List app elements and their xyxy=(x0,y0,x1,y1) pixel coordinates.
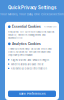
staticText: These cookies help us count visits and t… xyxy=(8,47,52,56)
staticText: Always On xyxy=(44,25,56,28)
staticText: Save Preferences xyxy=(19,92,45,95)
staticText: Analytics Cookies xyxy=(12,42,41,46)
button[interactable]: Save Preferences xyxy=(8,91,56,97)
staticText: Anonymous device information xyxy=(11,67,47,70)
staticText: Essential Cookies xyxy=(12,25,41,29)
staticText: Pages visited and session length xyxy=(11,58,49,62)
staticText: Which features are used most xyxy=(11,63,44,66)
staticText: Required for core site functions such as… xyxy=(8,30,54,39)
staticText: Your Modes, Your Data, One Click Selecti… xyxy=(0,13,64,16)
staticText: Quick Privacy Settings xyxy=(8,5,56,10)
